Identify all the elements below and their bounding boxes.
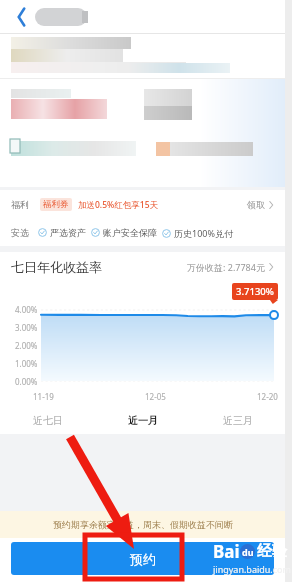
staticText: 近三月 — [223, 414, 253, 427]
staticText: 近七日 — [33, 414, 63, 427]
staticText: 近一月 — [128, 414, 158, 427]
staticText: 严选资产 — [50, 227, 86, 238]
button[interactable]: Back — [5, 2, 35, 32]
staticText: Bai — [213, 540, 240, 563]
button[interactable]: 预约 — [11, 542, 274, 575]
staticText: 万份收益: 2.7784元 — [187, 261, 265, 273]
staticText: 领取 — [247, 199, 265, 210]
button[interactable]: 福利 — [0, 190, 285, 219]
staticText: 安选 — [11, 227, 29, 238]
staticText: 七日年化收益率 — [11, 259, 102, 275]
staticText: 经验 — [257, 542, 287, 561]
staticText: 0.00% — [15, 376, 38, 387]
staticText: 加送0.5%红包享15天 — [78, 199, 159, 211]
staticText: 11-19 — [33, 391, 54, 402]
button[interactable]: 近三月 — [190, 406, 285, 434]
staticText: 福利券 — [43, 199, 69, 210]
staticText: 4.00% — [15, 304, 38, 315]
staticText: 2.00% — [15, 340, 38, 351]
staticText: 3.7130% — [236, 285, 274, 298]
staticText: 预约期享余额宝收益，周末、假期收益不间断 — [53, 519, 233, 530]
staticText: 1.00% — [15, 358, 38, 369]
staticText: 历史100%兑付 — [174, 227, 233, 239]
button[interactable]: 近七日 — [0, 406, 95, 434]
staticText: 福利 — [11, 199, 29, 210]
button[interactable]: 安选 — [0, 219, 285, 246]
staticText: 12-20 — [257, 391, 278, 402]
staticText: 12-05 — [145, 391, 166, 402]
staticText: 3.00% — [15, 322, 38, 333]
button[interactable]: 近一月 — [95, 406, 190, 434]
button[interactable]: 七日年化收益率 — [0, 252, 285, 282]
staticText: 预约 — [130, 551, 156, 567]
staticText: jingyan.baidu.com — [213, 563, 291, 575]
staticText: 账户安全保障 — [103, 227, 157, 238]
staticText: du — [242, 546, 254, 558]
